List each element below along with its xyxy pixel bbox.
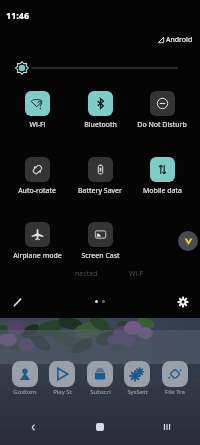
button[interactable]: Settings — [174, 293, 192, 311]
button[interactable]: Wi-Fi — [6, 91, 68, 130]
staticText: Wi-Fi — [29, 120, 46, 130]
button[interactable]: SysSett — [124, 361, 150, 387]
button[interactable]: Back — [0, 418, 66, 436]
staticText: Airplane mode — [13, 251, 62, 261]
staticText: Screen Cast — [81, 251, 120, 261]
button[interactable]: Recents — [133, 418, 200, 436]
button[interactable]: Bluetooth — [69, 91, 131, 130]
button[interactable]: Mobile data — [131, 157, 193, 196]
button[interactable]: Screen Cast — [69, 222, 131, 261]
staticText: Do Not Disturb — [137, 120, 187, 130]
button[interactable]: Play St — [49, 361, 75, 387]
staticText: Play St — [53, 388, 72, 396]
button[interactable]: Edit — [8, 293, 26, 311]
button[interactable]: Do Not Disturb — [131, 91, 193, 130]
button[interactable]: Airplane mode — [6, 222, 68, 261]
staticText: Goxbxme — [12, 388, 38, 396]
button[interactable]: Bubble — [178, 231, 198, 251]
staticText: nected — [75, 269, 98, 279]
staticText: Auto-rotate — [18, 186, 56, 196]
staticText: File Tra — [165, 388, 185, 396]
staticText: Mobile data — [143, 186, 182, 196]
button[interactable]: Goxbxme — [12, 361, 38, 387]
staticText: Subscri — [90, 388, 111, 396]
button[interactable]: Auto-rotate — [6, 157, 68, 196]
staticText: Wi-F — [129, 269, 144, 279]
staticText: SysSett — [127, 388, 148, 396]
button[interactable]: Battery Saver — [69, 157, 131, 196]
button[interactable]: Subscri — [87, 361, 113, 387]
staticText: Bluetooth — [84, 120, 117, 130]
button[interactable]: File Tra — [162, 361, 188, 387]
staticText: 11:46 — [6, 9, 30, 21]
staticText: Android — [166, 35, 193, 45]
button[interactable]: Home — [66, 418, 133, 436]
staticText: Battery Saver — [78, 186, 122, 196]
